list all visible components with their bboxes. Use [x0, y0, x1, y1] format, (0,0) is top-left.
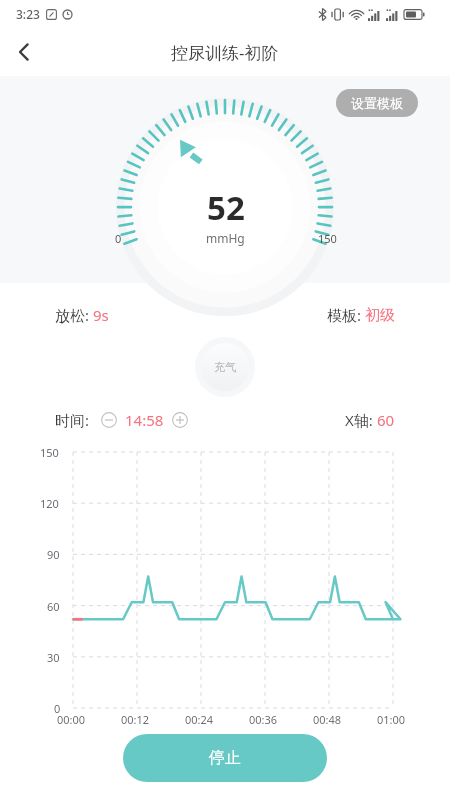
staticText: 90 — [47, 547, 60, 562]
button[interactable]: Back — [0, 28, 48, 76]
staticText: mmHg — [206, 230, 245, 246]
staticText: 00:12 — [121, 712, 150, 726]
staticText: 控尿训练-初阶 — [171, 41, 279, 64]
staticText: 9s — [93, 305, 109, 325]
staticText: 模板: — [327, 305, 365, 325]
staticText: 150 — [318, 231, 337, 246]
staticText: 00:36 — [249, 712, 278, 726]
staticText: 00:24 — [185, 712, 214, 726]
staticText: 充气 — [214, 360, 236, 374]
staticText: 14:58 — [125, 410, 164, 430]
staticText: 停止 — [209, 748, 241, 768]
staticText: 初级 — [365, 306, 395, 325]
staticText: 设置模板 — [351, 95, 403, 111]
staticText: 0 — [115, 231, 122, 246]
staticText: 60 — [47, 599, 60, 614]
staticText: 放松: — [55, 305, 93, 325]
staticText: X轴: — [345, 410, 377, 430]
button[interactable]: Increase time — [169, 409, 191, 431]
staticText: 01:00 — [377, 712, 406, 726]
staticText: 时间: — [55, 410, 93, 430]
staticText: 120 — [40, 496, 59, 511]
staticText: 3:23 — [16, 6, 40, 22]
staticText: 00:48 — [313, 712, 342, 726]
staticText: 0 — [54, 701, 61, 716]
button[interactable]: 停止 — [123, 734, 327, 782]
staticText: 150 — [40, 445, 59, 460]
staticText: 30 — [47, 650, 60, 665]
staticText: 52 — [207, 185, 245, 230]
button[interactable]: 设置模板 — [336, 89, 418, 117]
staticText: 60 — [377, 410, 395, 430]
button[interactable]: 充气 — [201, 343, 249, 391]
staticText: 00:00 — [57, 712, 86, 726]
button[interactable]: Decrease time — [98, 409, 120, 431]
